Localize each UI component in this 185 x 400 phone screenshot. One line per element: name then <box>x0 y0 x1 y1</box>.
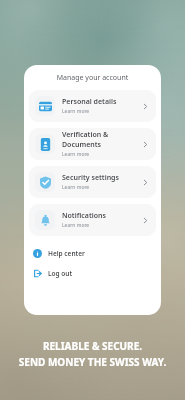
staticText: Learn more <box>62 108 90 115</box>
staticText: Learn more <box>62 222 90 229</box>
button[interactable]: Card icon <box>29 90 156 122</box>
staticText: Notifications <box>62 211 106 221</box>
staticText: Personal details <box>62 97 117 107</box>
staticText: SEND MONEY THE SWISS WAY. <box>0 355 185 369</box>
button[interactable]: Document icon <box>29 128 156 160</box>
other: Bell icon <box>35 210 55 230</box>
staticText: Log out <box>48 269 73 278</box>
staticText: Learn more <box>62 151 90 158</box>
staticText: Help center <box>48 249 85 258</box>
button[interactable]: Help center <box>24 247 161 260</box>
other: Card icon <box>35 96 55 116</box>
button[interactable]: Bell icon <box>29 204 156 236</box>
other: Document icon <box>35 134 55 154</box>
other: Shield icon <box>35 172 55 192</box>
staticText: Verification & Documents <box>62 130 141 150</box>
button[interactable]: Shield icon <box>29 166 156 198</box>
staticText: Manage your account <box>24 73 161 83</box>
staticText: RELIABLE & SECURE. <box>0 339 185 353</box>
staticText: Security settings <box>62 173 119 183</box>
staticText: Learn more <box>62 184 90 191</box>
button[interactable]: Log out <box>24 267 161 280</box>
